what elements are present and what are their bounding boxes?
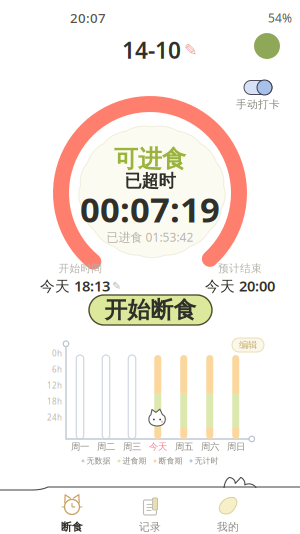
button[interactable]: 开始断食 — [89, 295, 212, 325]
staticText: 我的 — [217, 520, 239, 533]
button[interactable]: 记录 — [100, 492, 200, 534]
staticText: 周二 — [97, 441, 115, 452]
staticText: 已进食 01:53:42 — [106, 229, 193, 245]
staticText: 0h — [52, 348, 62, 359]
staticText: 预计结束 — [218, 262, 262, 275]
staticText: 记录 — [139, 520, 161, 533]
staticText: 20:07 — [70, 9, 106, 27]
staticText: 今天 18:13 — [40, 276, 110, 296]
staticText: 周六 — [201, 441, 219, 452]
staticText: 今天 20:00 — [205, 276, 275, 296]
staticText: 可进食 — [114, 144, 186, 174]
staticText: 周五 — [175, 441, 193, 452]
staticText: ✎ — [184, 41, 197, 59]
staticText: 手动打卡 — [236, 98, 280, 111]
staticText: 周一 — [71, 441, 89, 452]
staticText: 断食期 — [158, 456, 182, 466]
staticText: 断食 — [61, 520, 83, 533]
staticText: 编辑 — [239, 339, 257, 351]
staticText: 开始时间 — [58, 262, 102, 275]
staticText: 已超时 — [124, 170, 175, 192]
staticText: 无数据 — [86, 456, 110, 466]
staticText: 开始断食 — [104, 296, 196, 324]
staticText: 00:07:19 — [80, 186, 220, 232]
button[interactable]: 编辑 — [232, 338, 264, 352]
staticText: 18h — [47, 396, 62, 407]
button[interactable]: 断食 — [22, 492, 122, 534]
staticText: 6h — [52, 364, 62, 375]
staticText: 今天 — [149, 441, 167, 452]
staticText: 14-10 — [122, 35, 181, 65]
staticText: 周三 — [123, 441, 141, 452]
staticText: 无计时 — [194, 456, 218, 466]
staticText: ✎ — [112, 280, 121, 292]
button[interactable]: 我的 — [178, 492, 278, 534]
staticText: 进食期 — [122, 456, 146, 466]
staticText: 周日 — [227, 441, 245, 452]
staticText: 12h — [47, 380, 62, 391]
staticText: 54% — [268, 10, 292, 26]
staticText: 24h — [47, 412, 62, 423]
